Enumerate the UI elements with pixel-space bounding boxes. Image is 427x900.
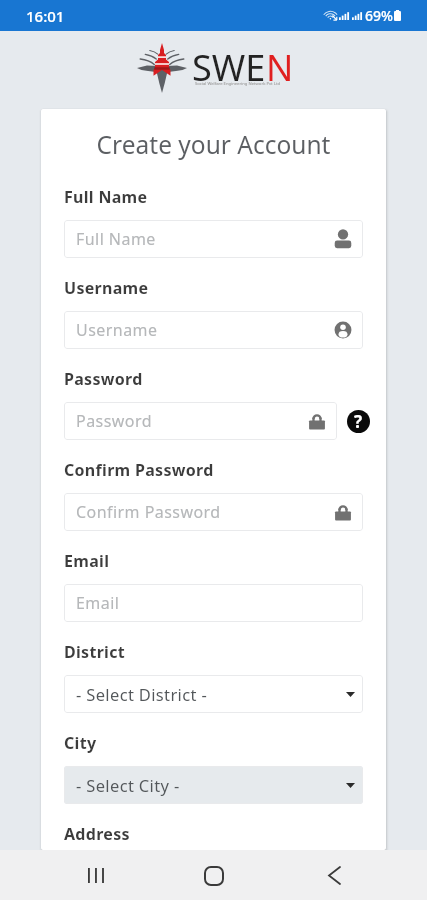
- staticText: Username: [64, 277, 149, 299]
- staticText: - Select District -: [76, 683, 208, 705]
- button[interactable]: Home: [189, 851, 238, 900]
- staticText: Full Name: [76, 228, 156, 250]
- staticText: Email: [64, 550, 110, 572]
- button[interactable]: - Select District -: [64, 675, 363, 713]
- staticText: Confirm Password: [76, 501, 221, 523]
- staticText: ?: [354, 410, 363, 433]
- button[interactable]: Confirm Password: [64, 493, 363, 531]
- staticText: Password: [64, 368, 143, 390]
- staticText: Full Name: [64, 186, 148, 208]
- staticText: Confirm Password: [64, 459, 214, 481]
- staticText: SWE: [192, 43, 266, 92]
- button[interactable]: Password: [64, 402, 337, 440]
- staticText: 69%: [365, 6, 393, 25]
- staticText: City: [64, 732, 97, 754]
- button[interactable]: Email: [64, 584, 363, 622]
- staticText: District: [64, 641, 126, 663]
- staticText: Username: [76, 319, 158, 341]
- staticText: 16:01: [26, 6, 65, 26]
- button[interactable]: Password requirements help: [347, 410, 370, 433]
- button[interactable]: Back: [310, 851, 359, 900]
- staticText: Social Welfare Engineering Network Pvt L…: [195, 81, 281, 87]
- staticText: Address: [64, 823, 130, 845]
- staticText: Email: [76, 592, 120, 614]
- staticText: N: [266, 43, 294, 92]
- staticText: - Select City -: [76, 774, 180, 796]
- staticText: Password: [76, 410, 152, 432]
- button[interactable]: Username: [64, 311, 363, 349]
- button[interactable]: Recents: [71, 851, 120, 900]
- button[interactable]: Full Name: [64, 220, 363, 258]
- button[interactable]: - Select City -: [64, 766, 363, 804]
- staticText: Create your Account: [41, 128, 386, 161]
